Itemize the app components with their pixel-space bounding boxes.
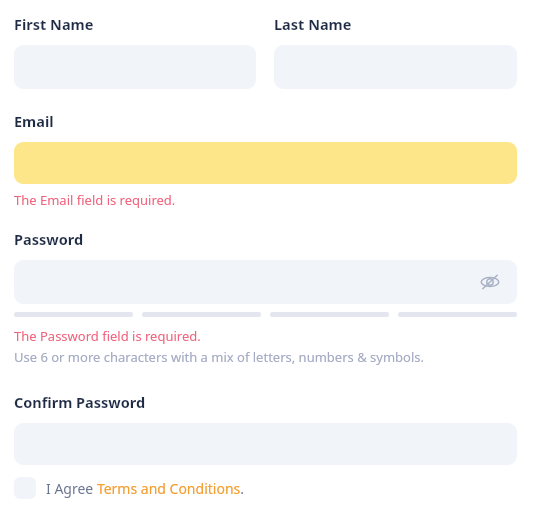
staticText: Password: [14, 229, 84, 249]
staticText: First Name: [14, 14, 94, 34]
button[interactable]: [14, 142, 517, 184]
button[interactable]: Show password: [477, 269, 503, 295]
staticText: Last Name: [274, 14, 352, 34]
staticText: The Email field is required.: [14, 191, 176, 209]
button[interactable]: I Agree Terms and Conditions.: [46, 479, 244, 498]
staticText: Use 6 or more characters with a mix of l…: [14, 348, 424, 366]
staticText: The Password field is required.: [14, 327, 201, 345]
button[interactable]: Show password: [14, 260, 517, 304]
staticText: I Agree Terms and Conditions.: [46, 479, 244, 498]
staticText: Confirm Password: [14, 392, 146, 412]
staticText: Email: [14, 111, 54, 131]
button[interactable]: I agree checkbox: [14, 477, 36, 499]
